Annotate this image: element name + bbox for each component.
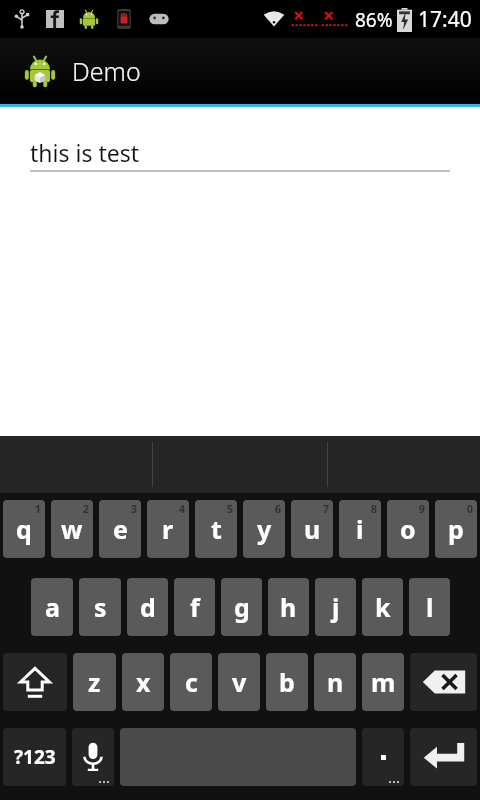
staticText: z [88,665,101,699]
staticText: 5 [226,501,233,516]
staticText: s [94,590,107,624]
staticText: 3 [130,501,137,516]
button[interactable]: Voice input [72,728,114,786]
button[interactable]: o [387,500,429,558]
staticText: m [371,665,396,699]
staticText: j [332,590,340,624]
staticText: 8 [370,501,377,516]
staticText: 9 [418,501,425,516]
staticText: i [356,512,364,546]
button[interactable]: v [218,653,260,711]
button[interactable]: c [170,653,212,711]
staticText: Demo [72,54,141,88]
staticText: x [136,665,151,699]
button[interactable]: Demo app, up [22,38,141,104]
staticText: 17:40 [418,5,472,34]
staticText: 4 [178,501,185,516]
button[interactable] [362,728,404,786]
button[interactable]: d [127,578,168,636]
staticText: ?123 [14,744,56,770]
staticText: k [375,590,391,624]
staticText: 6 [274,501,281,516]
staticText: 2 [82,501,89,516]
button[interactable]: s [79,578,121,636]
staticText: this is test [30,137,139,168]
button[interactable]: Enter [410,728,477,786]
button[interactable]: p [435,500,477,558]
button[interactable]: a [31,578,73,636]
staticText: e [113,512,128,546]
button[interactable]: w [51,500,93,558]
button[interactable]: ?123 [3,728,66,786]
staticText: u [304,512,321,546]
staticText: a [45,590,60,624]
staticText: p [448,512,464,546]
button[interactable]: Shift [3,653,67,711]
button[interactable]: y [243,500,285,558]
button[interactable]: m [362,653,404,711]
staticText: 1 [34,501,41,516]
button[interactable]: h [268,578,309,636]
staticText: b [279,665,295,699]
staticText: 7 [322,501,329,516]
staticText: c [185,665,198,699]
button[interactable]: k [362,578,403,636]
staticText: w [61,512,83,546]
staticText: o [400,512,416,546]
button[interactable]: b [266,653,308,711]
staticText: l [426,590,434,624]
button[interactable]: l [409,578,450,636]
button[interactable]: g [221,578,262,636]
staticText: h [280,590,297,624]
button[interactable]: this is test [30,137,450,172]
staticText: d [140,590,156,624]
staticText: g [234,590,250,624]
button[interactable]: x [122,653,164,711]
staticText: t [211,512,222,546]
staticText: y [257,512,272,546]
staticText: 86% [355,7,393,33]
button[interactable]: q [3,500,45,558]
button[interactable]: f [174,578,215,636]
button[interactable]: r [147,500,189,558]
button[interactable]: Backspace [410,653,477,711]
button[interactable]: z [73,653,116,711]
button[interactable]: e [99,500,141,558]
button[interactable]: u [291,500,333,558]
button[interactable]: t [195,500,237,558]
staticText: q [16,512,32,546]
staticText: f [190,590,200,624]
staticText: v [232,665,247,699]
staticText: n [327,665,344,699]
button[interactable]: i [339,500,381,558]
staticText: r [162,512,174,546]
button[interactable]: n [314,653,356,711]
staticText: 0 [466,501,473,516]
button[interactable]: j [315,578,356,636]
